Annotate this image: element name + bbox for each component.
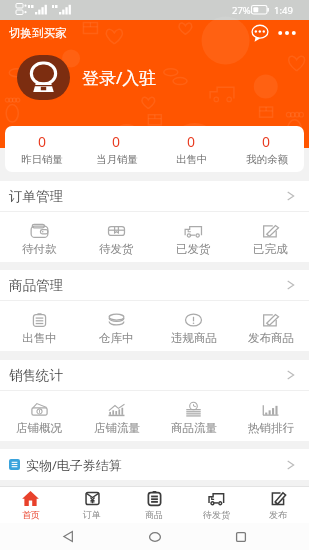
staticText: 出售中 bbox=[176, 153, 208, 166]
staticText: 发布商品 bbox=[248, 331, 294, 345]
staticText: 已完成 bbox=[253, 242, 288, 256]
staticText: 订单管理 bbox=[9, 188, 63, 205]
button[interactable]: 0 bbox=[5, 132, 79, 166]
button[interactable]: 待发货 bbox=[78, 219, 155, 256]
staticText: 我的余额 bbox=[246, 153, 288, 166]
staticText: 待付款 bbox=[22, 242, 57, 256]
button[interactable]: 订单管理 bbox=[0, 181, 309, 211]
button[interactable]: 违规商品 bbox=[155, 308, 232, 345]
button[interactable]: 已完成 bbox=[232, 219, 309, 256]
staticText: 商品管理 bbox=[9, 277, 63, 294]
button[interactable]: Back bbox=[50, 523, 86, 550]
staticText: 当月销量 bbox=[96, 153, 138, 166]
button[interactable]: 店铺流量 bbox=[78, 398, 155, 435]
button[interactable]: Account avatar bbox=[17, 55, 70, 100]
staticText: 销售统计 bbox=[9, 367, 63, 384]
button[interactable]: 订单 bbox=[61, 490, 123, 520]
button[interactable]: 仓库中 bbox=[78, 308, 155, 345]
button[interactable]: 商品 bbox=[123, 490, 185, 520]
button[interactable]: 已发货 bbox=[155, 219, 232, 256]
staticText: 昨日销量 bbox=[21, 153, 63, 166]
staticText: 1:49 bbox=[274, 4, 293, 17]
staticText: 登录/入驻 bbox=[82, 66, 157, 89]
staticText: 热销排行 bbox=[248, 421, 294, 435]
button[interactable]: 销售统计 bbox=[0, 360, 309, 390]
button[interactable]: 热销排行 bbox=[232, 398, 309, 435]
button[interactable]: Home bbox=[137, 523, 173, 550]
button[interactable]: 发布 bbox=[247, 490, 309, 520]
staticText: 0 bbox=[187, 132, 196, 151]
staticText: 0 bbox=[262, 132, 271, 151]
button[interactable]: 商品管理 bbox=[0, 270, 309, 300]
button[interactable]: 发布商品 bbox=[232, 308, 309, 345]
staticText: 实物/电子券结算 bbox=[26, 456, 122, 474]
staticText: 已发货 bbox=[176, 242, 211, 256]
staticText: 店铺概况 bbox=[16, 421, 62, 435]
staticText: 0 bbox=[38, 132, 47, 151]
button[interactable]: 登录/入驻 bbox=[82, 66, 157, 89]
button[interactable]: 出售中 bbox=[0, 308, 78, 345]
button[interactable]: 商品流量 bbox=[155, 398, 232, 435]
button[interactable]: 0 bbox=[79, 132, 154, 166]
staticText: 待发货 bbox=[99, 242, 134, 256]
staticText: 切换到买家 bbox=[9, 26, 67, 40]
staticText: 店铺流量 bbox=[94, 421, 140, 435]
staticText: 首页 bbox=[22, 509, 40, 520]
button[interactable]: 首页 bbox=[0, 490, 61, 520]
button[interactable]: 店铺概况 bbox=[0, 398, 78, 435]
staticText: 发布 bbox=[269, 509, 287, 520]
staticText: 0 bbox=[112, 132, 121, 151]
button[interactable]: Messages bbox=[251, 24, 269, 42]
staticText: 商品 bbox=[145, 509, 163, 520]
staticText: 待发货 bbox=[203, 509, 230, 520]
staticText: 商品流量 bbox=[171, 421, 217, 435]
button[interactable]: Recent apps bbox=[223, 523, 259, 550]
staticText: 出售中 bbox=[22, 331, 57, 345]
staticText: 订单 bbox=[83, 509, 101, 520]
button[interactable]: 实物/电子券结算 bbox=[0, 449, 309, 480]
button[interactable]: 切换到买家 bbox=[9, 26, 67, 40]
button[interactable]: More options bbox=[278, 27, 296, 39]
staticText: 违规商品 bbox=[171, 331, 217, 345]
button[interactable]: 待付款 bbox=[0, 219, 78, 256]
button[interactable]: 待发货 bbox=[185, 490, 247, 520]
button[interactable]: 0 bbox=[229, 132, 304, 166]
button[interactable]: 0 bbox=[154, 132, 229, 166]
staticText: 27% bbox=[232, 4, 251, 17]
staticText: 仓库中 bbox=[99, 331, 134, 345]
